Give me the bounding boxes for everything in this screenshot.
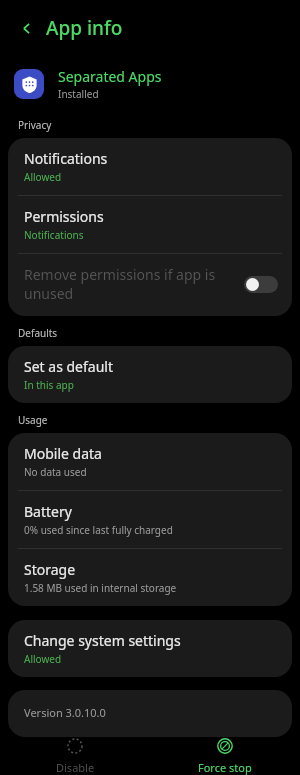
staticText: 1.58 MB used in internal storage <box>24 581 177 595</box>
button[interactable]: Disable <box>0 737 150 775</box>
button[interactable]: Battery <box>8 491 292 548</box>
staticText: Force stop <box>198 760 252 775</box>
staticText: No data used <box>24 465 87 479</box>
staticText: Allowed <box>24 652 62 666</box>
button[interactable]: Change system settings <box>8 620 292 677</box>
button[interactable]: Remove permissions if app is unused <box>8 254 292 316</box>
staticText: Set as default <box>24 357 113 376</box>
button[interactable]: Separated Apps <box>0 56 300 114</box>
button[interactable]: Storage <box>8 549 292 606</box>
staticText: Mobile data <box>24 444 102 463</box>
staticText: Defaults <box>18 326 58 340</box>
staticText: Notifications <box>24 228 84 242</box>
button[interactable]: Set as default <box>8 346 292 403</box>
staticText: Usage <box>18 413 48 427</box>
staticText: Privacy <box>18 118 52 132</box>
button[interactable]: Permissions <box>8 196 292 253</box>
staticText: App info <box>46 15 123 41</box>
staticText: Storage <box>24 560 76 579</box>
staticText: Separated Apps <box>58 67 162 86</box>
button[interactable]: Notifications <box>8 138 292 195</box>
button[interactable]: Force stop <box>150 737 300 775</box>
staticText: Battery <box>24 502 72 521</box>
button[interactable]: Mobile data <box>8 433 292 490</box>
staticText: Allowed <box>24 170 62 184</box>
staticText: Installed <box>58 87 99 101</box>
button[interactable]: Version 3.0.10.0 <box>8 690 292 737</box>
staticText: Version 3.0.10.0 <box>24 705 106 720</box>
staticText: 0% used since last fully charged <box>24 523 173 537</box>
staticText: In this app <box>24 378 74 392</box>
staticText: Disable <box>56 760 95 775</box>
staticText: Permissions <box>24 207 104 226</box>
staticText: Remove permissions if app is unused <box>24 265 232 303</box>
staticText: Change system settings <box>24 631 181 650</box>
button[interactable]: Back <box>13 15 39 41</box>
staticText: Notifications <box>24 149 108 168</box>
